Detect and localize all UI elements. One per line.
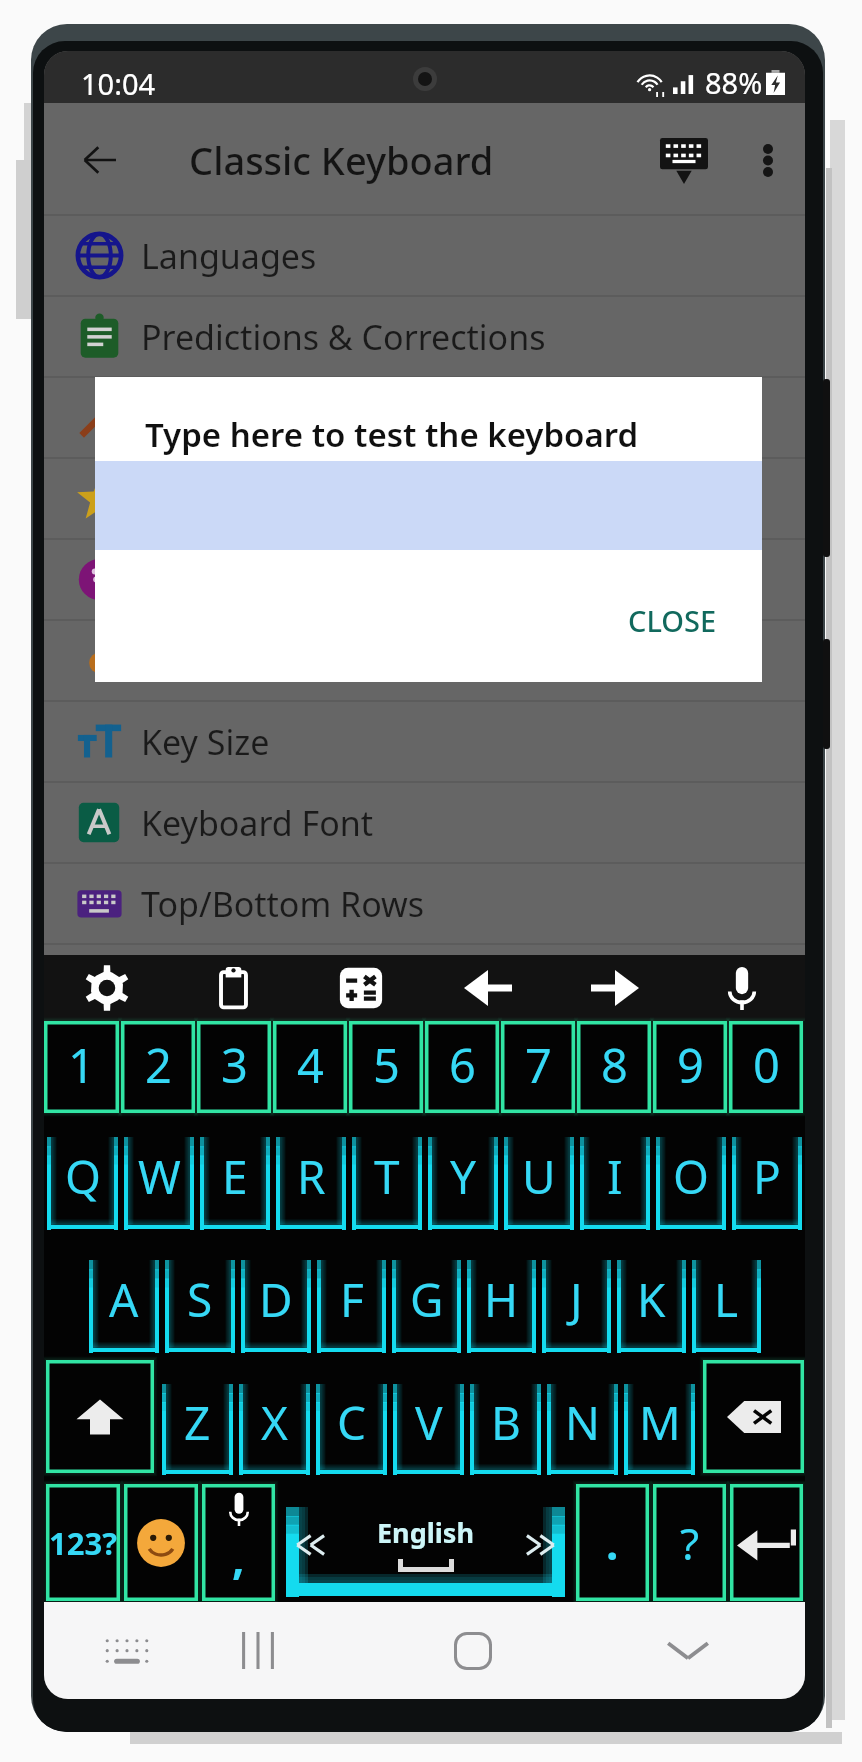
button[interactable]: Clipboard (170, 955, 297, 1021)
button[interactable]: Top/Bottom Rows (44, 864, 805, 945)
staticText: Type here to test the keyboard (145, 412, 639, 457)
staticText: C (337, 1391, 367, 1454)
button[interactable]: ? (651, 1482, 728, 1602)
button[interactable]: Recent apps (210, 1602, 306, 1699)
staticText: K (637, 1268, 666, 1331)
button[interactable]: G (389, 1236, 464, 1359)
staticText: N (565, 1391, 600, 1454)
button[interactable]: Q (44, 1113, 121, 1236)
button[interactable]: Space (277, 1482, 574, 1602)
button[interactable] (44, 540, 805, 621)
button[interactable]: Show keyboard (627, 120, 741, 200)
staticText: U (522, 1145, 556, 1208)
button[interactable]: J (539, 1236, 614, 1359)
button[interactable]: D (238, 1236, 314, 1359)
button[interactable]: 5 (349, 1021, 423, 1113)
button[interactable]: More options (741, 124, 795, 196)
button[interactable]: Shift (44, 1359, 159, 1482)
staticText: Languages (141, 233, 317, 279)
staticText: S (187, 1268, 213, 1331)
staticText: English (377, 1514, 474, 1551)
button[interactable]: I (577, 1113, 653, 1236)
staticText: . (606, 1513, 619, 1573)
button[interactable]: O (653, 1113, 729, 1236)
button[interactable]: P (729, 1113, 805, 1236)
button[interactable]: Voice input (678, 955, 805, 1021)
button[interactable]: Back (68, 127, 132, 193)
button[interactable]: 9 (653, 1021, 727, 1113)
button[interactable]: B (467, 1359, 544, 1482)
staticText: 88% (705, 63, 763, 102)
staticText: F (340, 1268, 364, 1331)
button[interactable]: R (273, 1113, 349, 1236)
staticText: O (673, 1145, 709, 1208)
staticText: 6 (449, 1033, 476, 1097)
button[interactable]: Hide keyboard (640, 1602, 736, 1699)
button[interactable]: Languages (44, 216, 805, 297)
staticText: 4 (297, 1033, 324, 1097)
button[interactable]: Home (425, 1602, 521, 1699)
button[interactable]: Backspace (698, 1359, 805, 1482)
button[interactable]: Move left (424, 955, 551, 1021)
button[interactable]: Enter (728, 1482, 805, 1602)
button[interactable]: U (501, 1113, 577, 1236)
button[interactable]: Keyboard Font (44, 783, 805, 864)
staticText: M (639, 1391, 681, 1454)
button[interactable]: Symbols (297, 955, 424, 1021)
button[interactable]: 8 (577, 1021, 651, 1113)
staticText: 8 (601, 1033, 628, 1097)
button[interactable]: S (162, 1236, 238, 1359)
button[interactable]: Z (159, 1359, 236, 1482)
staticText: , (232, 1527, 245, 1587)
button[interactable]: W (121, 1113, 197, 1236)
button[interactable]: Key Size (44, 702, 805, 783)
button[interactable]: C (313, 1359, 390, 1482)
button[interactable]: CLOSE (614, 589, 731, 652)
button[interactable]: Emoji (122, 1482, 200, 1602)
button[interactable] (44, 459, 805, 540)
button[interactable]: M (621, 1359, 698, 1482)
button[interactable]: K (614, 1236, 689, 1359)
button[interactable]: . (574, 1482, 651, 1602)
button[interactable]: F (314, 1236, 389, 1359)
staticText: Z (184, 1391, 211, 1454)
staticText: R (297, 1145, 326, 1208)
staticText: Classic Keyboard (189, 134, 494, 186)
staticText: Key Size (141, 719, 270, 765)
button[interactable]: T (349, 1113, 425, 1236)
button[interactable]: A (86, 1236, 162, 1359)
button[interactable]: 123? (44, 1482, 122, 1602)
button[interactable]: Predictions & Corrections (44, 297, 805, 378)
button[interactable]: E (197, 1113, 273, 1236)
staticText: Predictions & Corrections (141, 314, 546, 360)
button[interactable]: 3 (197, 1021, 271, 1113)
button[interactable]: 0 (729, 1021, 803, 1113)
button[interactable]: L (689, 1236, 764, 1359)
button[interactable]: 2 (121, 1021, 195, 1113)
staticText: T (374, 1145, 400, 1208)
button[interactable]: 6 (425, 1021, 499, 1113)
button[interactable]: N (544, 1359, 621, 1482)
staticText: B (491, 1391, 521, 1454)
button[interactable]: Change keyboard (79, 1602, 175, 1699)
button[interactable] (44, 378, 805, 459)
button[interactable]: H (464, 1236, 539, 1359)
button[interactable]: Comma, voice (200, 1482, 277, 1602)
button[interactable]: 7 (501, 1021, 575, 1113)
staticText: ? (680, 1513, 700, 1573)
staticText: Keyboard Font (141, 800, 374, 846)
button[interactable]: X (236, 1359, 313, 1482)
staticText: 7 (525, 1033, 552, 1097)
staticText: 3 (221, 1033, 248, 1097)
button[interactable]: 1 (44, 1021, 119, 1113)
button[interactable]: Settings (44, 955, 170, 1021)
button[interactable] (44, 621, 805, 702)
staticText: 10:04 (81, 64, 156, 103)
button[interactable]: 4 (273, 1021, 347, 1113)
staticText: 123? (49, 1522, 117, 1564)
button[interactable]: Move right (551, 955, 678, 1021)
button[interactable]: Y (425, 1113, 501, 1236)
staticText: G (410, 1268, 444, 1331)
staticText: Q (65, 1145, 101, 1208)
button[interactable]: V (390, 1359, 467, 1482)
